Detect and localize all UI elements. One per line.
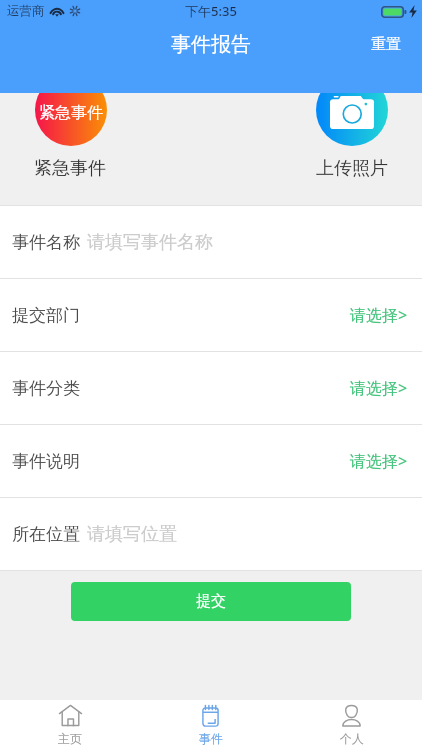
button[interactable]: 事件说明 xyxy=(0,425,422,497)
button[interactable]: 事件分类 xyxy=(0,352,422,424)
button[interactable]: 紧急事件 xyxy=(35,74,107,146)
button[interactable]: 事件 xyxy=(140,700,281,750)
staticText: 个人 xyxy=(340,731,364,746)
staticText: 提交部门 xyxy=(12,305,80,326)
staticText: 请选择> xyxy=(350,377,408,399)
staticText: 请填写位置 xyxy=(87,523,177,546)
staticText: 事件分类 xyxy=(12,378,80,399)
staticText: 事件报告 xyxy=(171,32,251,57)
button[interactable]: 上传照片 xyxy=(316,74,388,146)
button[interactable]: 事件名称 xyxy=(0,206,422,278)
staticText: 所在位置 xyxy=(12,524,80,545)
button[interactable]: 所在位置 xyxy=(0,498,422,570)
staticText: 事件名称 xyxy=(12,232,80,253)
staticText: 运营商 xyxy=(7,3,45,19)
staticText: 重置 xyxy=(371,35,401,54)
staticText: 事件 xyxy=(199,731,223,746)
staticText: 下午5:35 xyxy=(185,2,237,20)
staticText: 紧急事件 xyxy=(39,103,103,123)
staticText: 上传照片 xyxy=(316,157,388,180)
staticText: 请选择> xyxy=(350,450,408,472)
button[interactable]: 提交部门 xyxy=(0,279,422,351)
staticText: 提交 xyxy=(196,592,226,611)
staticText: 紧急事件 xyxy=(34,157,106,180)
button[interactable]: 个人 xyxy=(281,700,422,750)
staticText: 请选择> xyxy=(350,304,408,326)
button[interactable]: 重置 xyxy=(358,29,422,60)
staticText: 请填写事件名称 xyxy=(87,231,213,254)
button[interactable]: 提交 xyxy=(71,582,351,621)
button[interactable]: 主页 xyxy=(0,700,140,750)
staticText: 事件说明 xyxy=(12,451,80,472)
staticText: 主页 xyxy=(58,731,82,746)
